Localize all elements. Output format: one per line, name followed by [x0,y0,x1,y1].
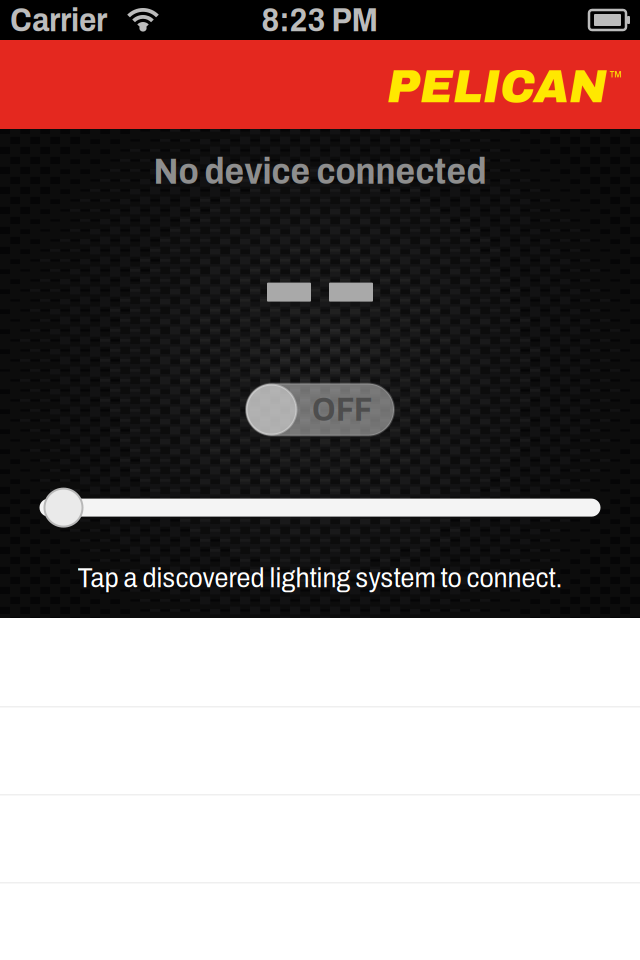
button[interactable]: Power switch, off [246,384,394,436]
staticText: ™ [609,68,622,85]
staticText: 8:23 PM [261,2,378,38]
staticText: Tap a discovered lighting system to conn… [77,563,562,593]
staticText: OFF [312,391,372,428]
staticText: No device connected [153,151,486,192]
staticText: Carrier [10,2,107,38]
staticText: PELICAN [387,62,607,112]
